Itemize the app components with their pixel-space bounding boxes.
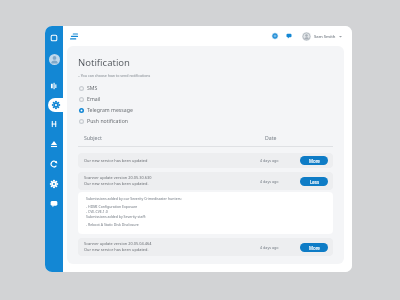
button[interactable]: Dashboard (45, 31, 63, 45)
staticText: Telegram message (87, 106, 133, 113)
button[interactable]: Push notification (78, 115, 129, 126)
staticText: Subject (84, 134, 102, 141)
button[interactable]: History (45, 117, 63, 131)
staticText: Scanner update version 20.05.30.630 (84, 175, 152, 180)
button[interactable]: Scanner update version 20.05.30.630 (78, 172, 333, 190)
button[interactable]: Telegram message (78, 104, 133, 115)
staticText: Submissions added by our Severity Crimed… (86, 196, 182, 201)
button[interactable]: Reports (45, 79, 63, 93)
staticText: Our new service has been updated. (84, 247, 149, 252)
staticText: Date (265, 134, 277, 141)
staticText: 4 days ago (260, 245, 279, 250)
staticText: 4 days ago (260, 158, 279, 163)
staticText: Submissions added by Severity staff: (86, 214, 146, 219)
button[interactable]: More (300, 243, 328, 252)
button[interactable]: Messages (284, 31, 294, 41)
staticText: - Reboot A Static Disk Disclosure (86, 222, 139, 227)
staticText: Scanner update version 20.05.04.464 (84, 241, 152, 246)
staticText: - CVE-CVE-1.0 (86, 209, 108, 214)
button[interactable]: Settings (45, 177, 63, 191)
button[interactable]: Uploads (45, 137, 63, 151)
staticText: SMS (87, 84, 98, 91)
staticText: Sam Smith (314, 34, 336, 40)
staticText: Our new service has been updated (84, 158, 148, 163)
staticText: 4 days ago (260, 179, 279, 184)
button[interactable]: More (300, 156, 328, 165)
button[interactable]: Messages (45, 197, 63, 211)
staticText: – You can choose how to send notificatio… (78, 73, 151, 78)
button[interactable]: Settings (270, 31, 280, 41)
button[interactable]: SMS (78, 82, 98, 93)
button[interactable]: Notification settings (45, 98, 63, 112)
button[interactable]: Refresh (45, 157, 63, 171)
staticText: - HDMI Configuration Exposure (86, 204, 138, 209)
staticText: Push notification (87, 117, 129, 124)
button[interactable]: Profile (45, 51, 63, 67)
staticText: More (309, 158, 320, 164)
button[interactable]: Menu (68, 30, 80, 42)
staticText: Email (87, 95, 101, 102)
button[interactable]: Scanner update version 20.05.04.464 (78, 238, 333, 256)
button[interactable]: Our new service has been updated (78, 153, 333, 168)
staticText: Notification (78, 56, 130, 69)
button[interactable]: Email (78, 93, 101, 104)
staticText: Our new service has been updated. (84, 181, 149, 186)
staticText: More (309, 245, 320, 251)
staticText: Less (310, 179, 319, 185)
button[interactable]: Less (300, 177, 328, 186)
button[interactable]: Sam Smith (302, 32, 342, 41)
